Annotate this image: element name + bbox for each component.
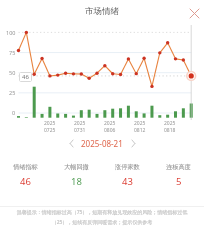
button[interactable]: Close	[186, 5, 203, 22]
staticText: 连板高度	[166, 163, 191, 171]
staticText: 75	[9, 49, 16, 56]
staticText: 2025	[164, 120, 176, 127]
button[interactable]: 大幅回撤	[51, 163, 102, 188]
staticText: 温馨提示：情绪指标过高（75），短期有释放兑现效应的风险；情绪指标过低（25），…	[9, 209, 195, 225]
staticText: 2025	[44, 120, 56, 127]
button[interactable]: 连板高度	[153, 163, 204, 188]
button[interactable]: Previous day	[64, 136, 78, 150]
staticText: 46	[22, 73, 29, 81]
staticText: 100	[6, 29, 16, 36]
button[interactable]: 涨停家数	[102, 163, 153, 188]
staticText: 大幅回撤	[64, 163, 89, 171]
staticText: 5	[176, 175, 182, 188]
staticText: 涨停家数	[115, 163, 140, 171]
button[interactable]: 情绪指标	[0, 163, 51, 188]
staticText: 0806	[104, 127, 116, 134]
staticText: 43	[122, 175, 133, 188]
staticText: 0725	[44, 127, 56, 134]
staticText: 2025	[74, 120, 86, 127]
staticText: 情绪指标	[13, 163, 38, 171]
staticText: 0818	[164, 127, 176, 134]
staticText: 2025-08-21	[81, 138, 123, 149]
staticText: 25	[9, 89, 16, 96]
staticText: 市场情绪	[85, 6, 119, 17]
staticText: 0731	[74, 127, 86, 134]
staticText: 18	[71, 175, 82, 188]
staticText: 50	[9, 69, 16, 76]
staticText: 2025	[104, 120, 116, 127]
staticText: 46	[20, 175, 31, 188]
staticText: 0812	[134, 127, 146, 134]
staticText: 0	[12, 109, 16, 116]
staticText: 2025	[134, 120, 146, 127]
button[interactable]: Next day	[126, 136, 140, 150]
